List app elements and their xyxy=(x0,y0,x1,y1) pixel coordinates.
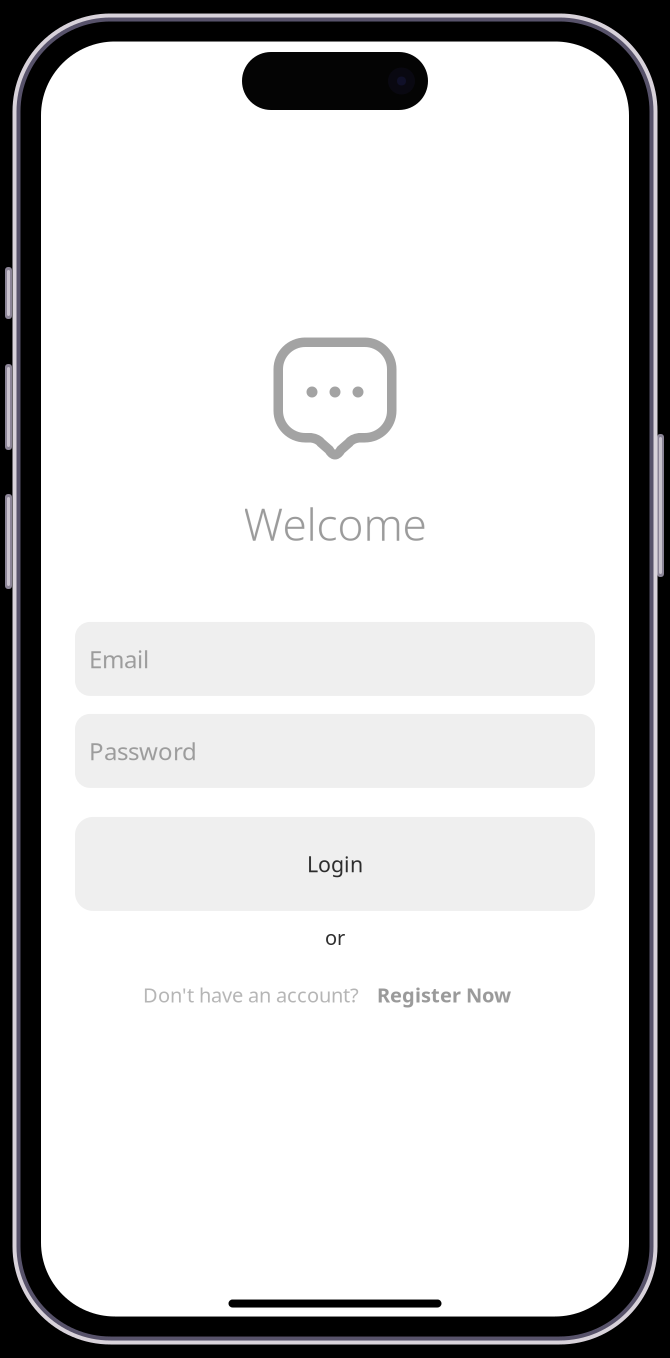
button[interactable]: Email xyxy=(75,622,595,696)
staticText: Don't have an account? xyxy=(143,981,359,1008)
staticText: Email xyxy=(89,643,149,675)
staticText: Welcome xyxy=(243,494,426,553)
staticText: Register Now xyxy=(377,981,511,1008)
button[interactable]: Password xyxy=(75,714,595,788)
button[interactable]: Login xyxy=(75,817,595,911)
button[interactable]: Register Now xyxy=(377,981,511,1008)
staticText: Password xyxy=(89,735,197,767)
staticText: or xyxy=(325,924,345,950)
staticText: Login xyxy=(307,850,363,878)
